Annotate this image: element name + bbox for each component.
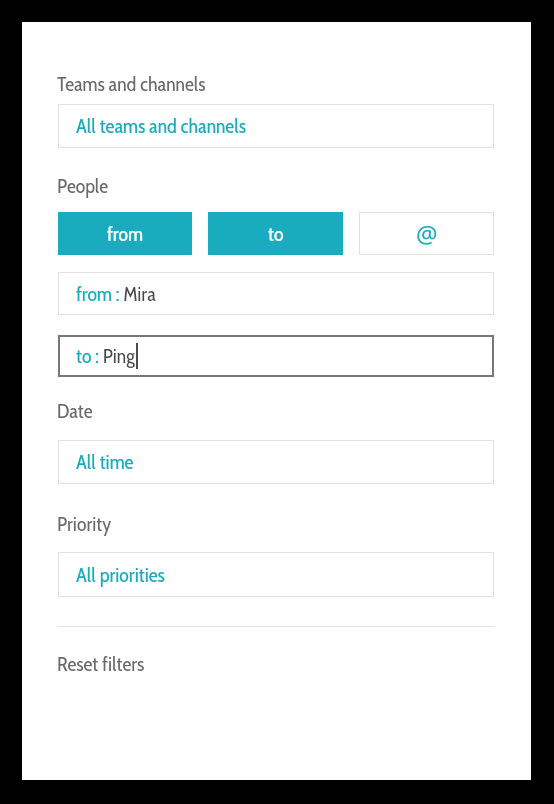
button[interactable]: All priorities — [58, 552, 494, 597]
staticText: All time — [76, 450, 134, 474]
button[interactable]: to : Ping — [58, 335, 494, 377]
button[interactable]: @ — [359, 212, 494, 255]
staticText: Teams and channels — [57, 72, 206, 96]
staticText: People — [57, 174, 109, 198]
staticText: from : Mira — [76, 282, 156, 306]
button[interactable]: All teams and channels — [58, 104, 494, 148]
staticText: to : Ping — [76, 344, 135, 368]
button[interactable]: to — [208, 212, 343, 255]
staticText: Reset filters — [57, 652, 145, 676]
button[interactable]: Reset filters — [57, 652, 145, 676]
staticText: to — [268, 222, 284, 246]
staticText: All teams and channels — [76, 114, 246, 138]
staticText: Priority — [57, 512, 112, 536]
button[interactable]: from — [58, 212, 192, 255]
button[interactable]: from : Mira — [58, 272, 494, 315]
staticText: All priorities — [76, 563, 165, 587]
staticText: from — [107, 222, 143, 246]
button[interactable]: All time — [58, 440, 494, 484]
staticText: Date — [57, 399, 93, 423]
staticText: @ — [416, 217, 438, 250]
